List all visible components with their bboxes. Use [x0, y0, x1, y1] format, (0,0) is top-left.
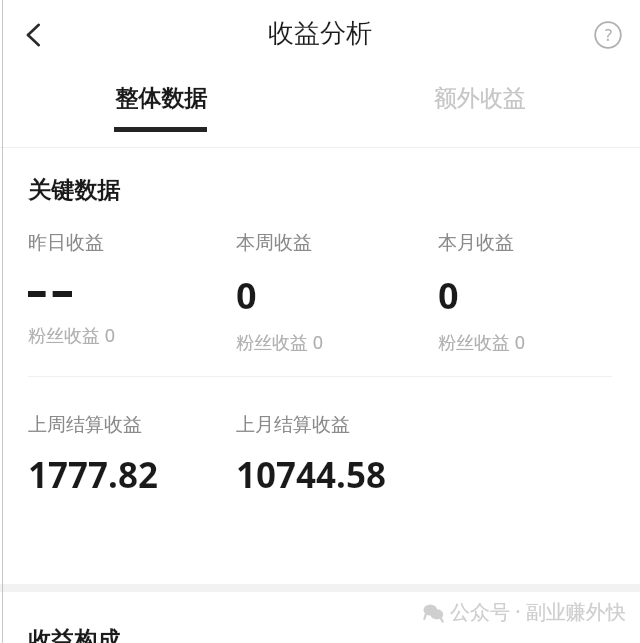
staticText: 整体数据 [115, 84, 207, 113]
staticText: 额外收益 [434, 84, 526, 113]
button[interactable]: Back [6, 7, 62, 63]
staticText: 1777.82 [28, 451, 158, 499]
staticText: 0 [236, 271, 257, 320]
staticText: 粉丝收益 0 [28, 323, 115, 348]
staticText: 上周结算收益 [28, 413, 142, 437]
button[interactable]: 上月结算收益 [236, 413, 436, 499]
button[interactable]: 昨日收益 [28, 231, 218, 348]
staticText: 粉丝收益 0 [236, 330, 323, 355]
staticText: 本周收益 [236, 231, 312, 255]
staticText: 收益构成 [28, 626, 120, 643]
staticText: ? [605, 24, 612, 46]
staticText: 公众号 · 副业赚外快 [450, 598, 626, 625]
staticText: 关键数据 [28, 176, 120, 205]
button[interactable]: 额外收益 [410, 70, 550, 142]
button[interactable]: 整体数据 [90, 70, 230, 142]
staticText: 上月结算收益 [236, 413, 350, 437]
staticText: 昨日收益 [28, 231, 104, 255]
staticText: 收益分析 [268, 17, 372, 50]
button[interactable]: 本周收益 [236, 231, 426, 355]
button[interactable]: 本月收益 [438, 231, 628, 355]
staticText: 本月收益 [438, 231, 514, 255]
staticText: 0 [438, 271, 459, 320]
staticText: 粉丝收益 0 [438, 330, 525, 355]
button[interactable]: 上周结算收益 [28, 413, 228, 499]
button[interactable]: Help [582, 9, 634, 61]
staticText: 10744.58 [236, 451, 386, 499]
